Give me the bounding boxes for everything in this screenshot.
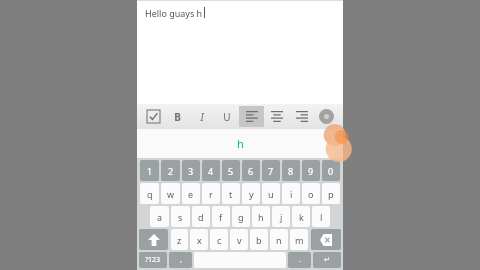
staticText: p (328, 188, 334, 200)
button[interactable]: 7 (262, 160, 280, 181)
staticText: z (177, 234, 182, 246)
button[interactable]: f (212, 206, 230, 227)
staticText: b (256, 234, 262, 246)
staticText: m (295, 234, 304, 246)
staticText: v (237, 234, 242, 246)
button[interactable]: Backspace (311, 229, 341, 250)
staticText: t (229, 188, 233, 200)
staticText: ?123 (145, 255, 161, 265)
button[interactable]: j (272, 206, 290, 227)
button[interactable]: Shift (139, 229, 168, 250)
button[interactable]: q (140, 183, 159, 204)
button[interactable]: u (262, 183, 280, 204)
staticText: h (258, 211, 264, 223)
staticText: ↵ (324, 256, 330, 264)
staticText: g (238, 211, 244, 223)
staticText: n (276, 234, 282, 246)
button[interactable]: Align right (289, 106, 314, 127)
button[interactable]: o (302, 183, 320, 204)
button[interactable]: d (192, 206, 210, 227)
staticText: y (249, 188, 254, 200)
button[interactable]: 4 (202, 160, 220, 181)
button[interactable]: 3 (182, 160, 200, 181)
staticText: i (290, 188, 293, 200)
button[interactable]: ↵ (313, 252, 341, 268)
button[interactable]: 5 (222, 160, 240, 181)
button[interactable]: t (222, 183, 240, 204)
staticText: x (197, 234, 202, 246)
staticText: k (299, 211, 304, 223)
button[interactable]: p (322, 183, 340, 204)
button[interactable]: Checklist (141, 104, 165, 129)
staticText: 3 (188, 165, 194, 177)
staticText: 8 (288, 165, 294, 177)
staticText: 6 (248, 165, 254, 177)
staticText: 4 (208, 165, 214, 177)
staticText: s (178, 211, 183, 223)
button[interactable]: a (150, 206, 169, 227)
staticText: 7 (268, 165, 274, 177)
button[interactable]: w (161, 183, 180, 204)
button[interactable]: z (171, 229, 188, 250)
staticText: f (219, 211, 223, 223)
button[interactable]: m (290, 229, 308, 250)
button[interactable]: Hello guays h (137, 0, 343, 104)
button[interactable]: i (282, 183, 300, 204)
staticText: d (198, 211, 204, 223)
button[interactable]: h (252, 206, 270, 227)
button[interactable]: n (270, 229, 288, 250)
staticText: a (157, 211, 163, 223)
staticText: . (299, 255, 301, 265)
staticText: h (237, 136, 244, 151)
button[interactable]: U (214, 104, 239, 129)
button[interactable]: s (171, 206, 190, 227)
staticText: B (174, 110, 181, 124)
button[interactable]: More options (319, 109, 334, 124)
button[interactable]: y (242, 183, 260, 204)
staticText: U (223, 110, 231, 124)
staticText: e (188, 188, 194, 200)
button[interactable]: Align center (264, 106, 289, 127)
button[interactable]: k (292, 206, 310, 227)
button[interactable]: Align left (239, 106, 264, 127)
button[interactable]: B (165, 104, 189, 129)
button[interactable]: h (137, 129, 343, 158)
staticText: c (217, 234, 222, 246)
staticText: 1 (147, 165, 153, 177)
staticText: r (209, 188, 213, 200)
staticText: , (180, 255, 182, 265)
button[interactable]: c (210, 229, 228, 250)
button[interactable]: v (230, 229, 248, 250)
button[interactable]: 2 (161, 160, 180, 181)
staticText: 2 (168, 165, 174, 177)
button[interactable]: x (190, 229, 208, 250)
button[interactable]: l (312, 206, 330, 227)
button[interactable]: e (182, 183, 200, 204)
staticText: u (268, 188, 274, 200)
button[interactable]: g (232, 206, 250, 227)
button[interactable]: 6 (242, 160, 260, 181)
staticText: 9 (308, 165, 314, 177)
button[interactable]: ?123 (139, 252, 167, 268)
staticText: 0 (328, 165, 334, 177)
button[interactable]: r (202, 183, 220, 204)
button[interactable]: 0 (322, 160, 340, 181)
button[interactable]: , (169, 252, 192, 268)
button[interactable]: 8 (282, 160, 300, 181)
staticText: Hello guays h (145, 7, 203, 19)
button[interactable]: b (250, 229, 268, 250)
staticText: j (280, 211, 283, 223)
button[interactable]: . (288, 252, 311, 268)
button[interactable]: 9 (302, 160, 320, 181)
staticText: q (147, 188, 153, 200)
staticText: o (308, 188, 314, 200)
staticText: 5 (228, 165, 234, 177)
staticText: w (167, 188, 175, 200)
staticText: I (200, 110, 204, 124)
staticText: l (320, 211, 323, 223)
button[interactable]: I (189, 104, 214, 129)
button[interactable]: 1 (140, 160, 159, 181)
